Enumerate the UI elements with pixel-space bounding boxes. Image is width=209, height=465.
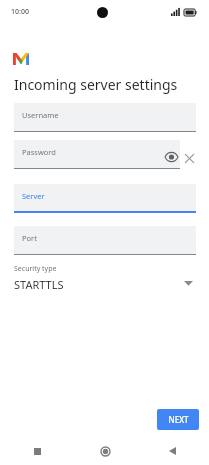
- button[interactable]: Server: [14, 184, 196, 215]
- staticText: 10:00: [11, 7, 29, 17]
- staticText: Server: [22, 191, 45, 201]
- button[interactable]: Password: [14, 140, 180, 171]
- button[interactable]: Show password: [162, 148, 180, 166]
- button[interactable]: Recent apps: [7, 437, 67, 465]
- button[interactable]: Clear password: [182, 151, 196, 165]
- staticText: STARTTLS: [14, 277, 64, 292]
- staticText: Port: [22, 233, 37, 243]
- button[interactable]: Security type: [14, 264, 196, 298]
- button[interactable]: Username: [14, 103, 196, 134]
- staticText: Username: [22, 110, 59, 120]
- button[interactable]: Home: [75, 437, 135, 465]
- staticText: Password: [22, 147, 56, 157]
- staticText: Incoming server settings: [14, 75, 178, 94]
- button[interactable]: Port: [14, 226, 196, 257]
- button[interactable]: Back: [142, 437, 202, 465]
- staticText: Security type: [14, 264, 57, 274]
- button[interactable]: NEXT: [157, 409, 199, 430]
- staticText: NEXT: [168, 414, 189, 425]
